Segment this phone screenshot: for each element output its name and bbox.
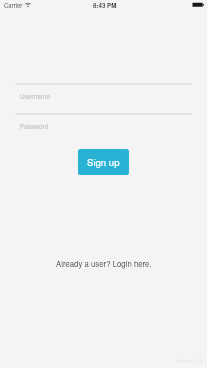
- staticText: Password: [20, 122, 49, 131]
- staticText: Sign up: [87, 155, 120, 169]
- button[interactable]: Sign up: [78, 149, 129, 175]
- other: Wi-Fi signal: [24, 0, 33, 12]
- staticText: Already a user? Login here.: [56, 258, 152, 269]
- button[interactable]: Password field: [15, 115, 192, 143]
- button[interactable]: Already a user? Login here.: [50, 255, 157, 271]
- staticText: Version 1.2.3: [176, 358, 203, 365]
- staticText: 8:43 PM: [93, 1, 117, 10]
- other: Battery full: [190, 0, 207, 12]
- staticText: Carrier: [4, 1, 23, 10]
- staticText: Username: [20, 92, 50, 101]
- button[interactable]: Username field: [15, 85, 192, 113]
